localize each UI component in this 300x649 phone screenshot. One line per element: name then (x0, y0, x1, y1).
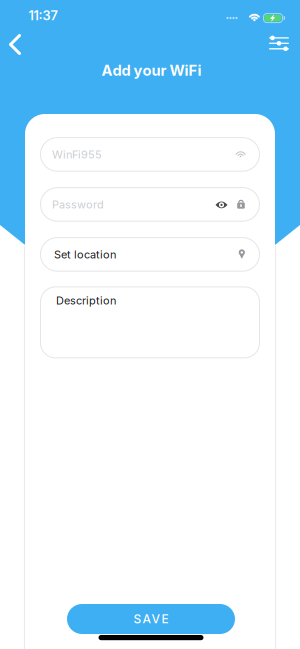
staticText: SAVE (133, 612, 168, 626)
staticText: Description (56, 294, 116, 307)
button[interactable]: Set location (40, 237, 260, 272)
button[interactable]: Back (5, 32, 29, 56)
staticText: Add your WiFi (101, 62, 201, 79)
button[interactable]: Description (40, 286, 260, 358)
button[interactable]: Password (40, 187, 260, 222)
button[interactable]: Network name, WinFi955 (40, 137, 260, 172)
staticText: Set location (54, 248, 116, 261)
button[interactable]: SAVE (67, 604, 235, 634)
button[interactable]: Show password (212, 198, 230, 212)
staticText: 11:37 (28, 8, 57, 23)
staticText: WinFi955 (52, 148, 102, 161)
staticText: Password (52, 198, 104, 211)
button[interactable]: Settings (265, 33, 293, 53)
